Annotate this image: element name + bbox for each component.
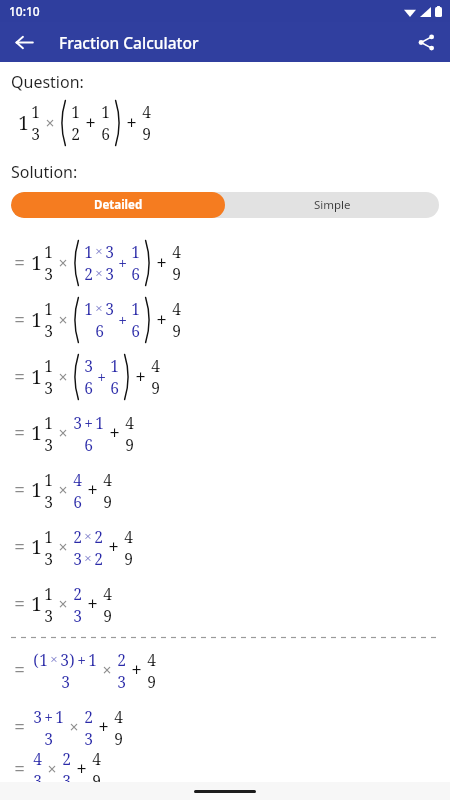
staticText: 1	[88, 649, 97, 670]
staticText: 4	[172, 241, 181, 262]
staticText: ×	[47, 758, 57, 780]
staticText: 9	[172, 320, 181, 341]
staticText: 9	[147, 671, 156, 692]
staticText: 3	[44, 434, 53, 455]
staticText: 6	[73, 491, 82, 512]
staticText: 3	[117, 671, 126, 692]
staticText: 3	[84, 355, 93, 376]
staticText: 9	[103, 491, 112, 512]
staticText: 4	[103, 583, 112, 604]
button[interactable]: Simple	[225, 192, 439, 218]
staticText: 4	[147, 649, 156, 670]
staticText: +	[118, 252, 127, 273]
staticText: ×	[58, 536, 68, 558]
staticText: 3	[73, 605, 82, 626]
staticText: 6	[131, 320, 140, 341]
staticText: 3	[44, 491, 53, 512]
staticText: Detailed	[94, 197, 143, 213]
staticText: +	[109, 420, 120, 446]
staticText: +	[85, 110, 96, 136]
staticText: 4	[124, 526, 133, 547]
button[interactable]: Share	[408, 24, 444, 60]
staticText: 4	[172, 298, 181, 319]
staticText: 2	[71, 123, 80, 144]
button[interactable]: Home gesture	[194, 790, 256, 793]
staticText: 1	[84, 241, 93, 262]
staticText: +	[97, 366, 106, 387]
staticText: 3	[33, 706, 42, 727]
button[interactable]: Back	[6, 24, 42, 60]
staticText: 4	[151, 355, 160, 376]
staticText: 1	[131, 298, 140, 319]
staticText: 1	[31, 250, 42, 276]
staticText: 4	[142, 101, 151, 122]
staticText: +	[156, 250, 167, 276]
staticText: 3	[105, 241, 114, 262]
staticText: 4	[114, 706, 123, 727]
staticText: 1	[44, 355, 53, 376]
button[interactable]: Detailed	[11, 192, 225, 218]
staticText: 3	[44, 728, 53, 749]
staticText: +	[131, 657, 142, 683]
staticText: Solution:	[11, 161, 78, 183]
staticText: 1	[71, 101, 80, 122]
staticText: 4	[73, 469, 82, 490]
staticText: ×	[58, 309, 68, 331]
staticText: =	[14, 420, 25, 446]
staticText: ×	[95, 264, 103, 282]
staticText: 3	[44, 320, 53, 341]
staticText: 1	[95, 412, 104, 433]
staticText: 1	[131, 241, 140, 262]
staticText: +	[98, 714, 109, 740]
staticText: 3	[84, 728, 93, 749]
staticText: 3	[61, 671, 70, 692]
staticText: 3	[73, 412, 82, 433]
staticText: 2	[73, 583, 82, 604]
staticText: =	[14, 756, 25, 782]
staticText: 9	[125, 434, 134, 455]
staticText: )	[69, 649, 75, 670]
staticText: 9	[124, 548, 133, 569]
staticText: 3	[44, 263, 53, 284]
staticText: 1	[44, 526, 53, 547]
staticText: 1	[84, 298, 93, 319]
staticText: 9	[151, 377, 160, 398]
staticText: +	[87, 591, 98, 617]
staticText: 6	[84, 434, 93, 455]
staticText: 2	[84, 706, 93, 727]
staticText: ×	[84, 527, 92, 545]
staticText: 3	[44, 377, 53, 398]
staticText: 3	[60, 649, 69, 670]
staticText: ×	[58, 422, 68, 444]
staticText: 2	[84, 263, 93, 284]
staticText: ×	[58, 479, 68, 501]
staticText: 1	[101, 101, 110, 122]
staticText: 6	[101, 123, 110, 144]
staticText: 1	[44, 412, 53, 433]
staticText: 1	[44, 469, 53, 490]
staticText: =	[14, 714, 25, 740]
staticText: +	[135, 364, 146, 390]
staticText: 4	[33, 748, 42, 769]
staticText: =	[14, 591, 25, 617]
staticText: 1	[55, 706, 64, 727]
staticText: ×	[95, 299, 103, 317]
staticText: 1	[44, 298, 53, 319]
staticText: 4	[103, 469, 112, 490]
staticText: +	[87, 477, 98, 503]
staticText: +	[118, 309, 127, 330]
staticText: ×	[102, 659, 112, 681]
staticText: 9	[172, 263, 181, 284]
staticText: 1	[31, 591, 42, 617]
staticText: ×	[58, 593, 68, 615]
staticText: ×	[69, 716, 79, 738]
staticText: ×	[84, 549, 92, 567]
staticText: 3	[44, 548, 53, 569]
staticText: =	[14, 250, 25, 276]
staticText: 1	[18, 110, 29, 136]
staticText: +	[76, 756, 87, 782]
staticText: =	[14, 477, 25, 503]
staticText: 3	[62, 770, 71, 791]
staticText: 6	[95, 320, 104, 341]
staticText: 1	[31, 364, 42, 390]
